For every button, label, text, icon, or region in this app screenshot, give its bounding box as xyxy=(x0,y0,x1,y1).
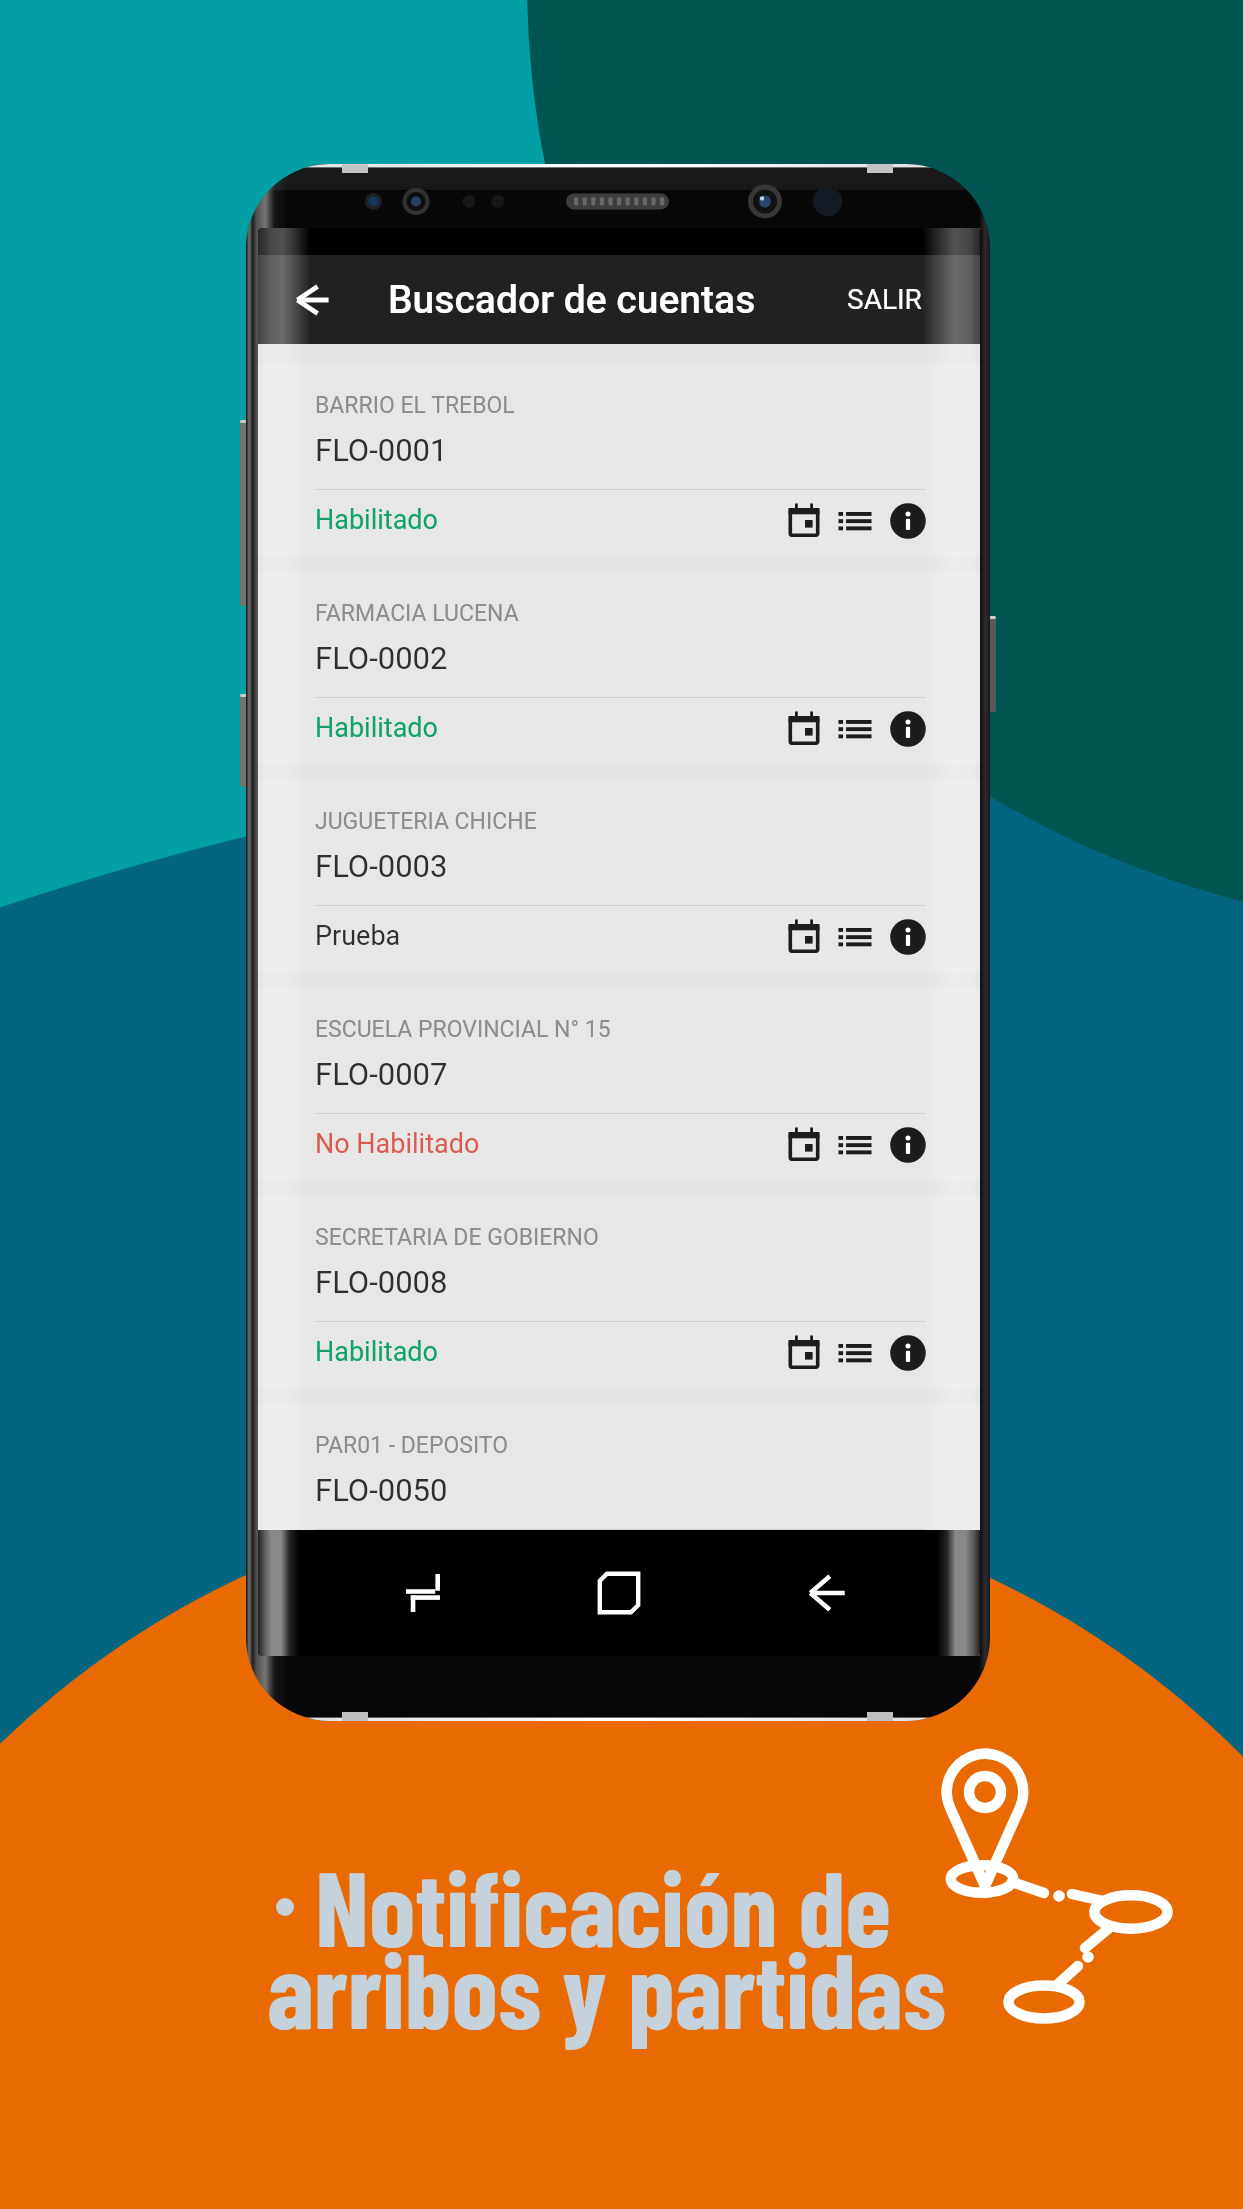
button[interactable]: Back xyxy=(275,262,351,338)
button[interactable]: Informacion xyxy=(881,702,935,756)
staticText: BARRIO EL TREBOL xyxy=(315,392,515,419)
staticText: SALIR xyxy=(847,283,922,316)
button[interactable]: Informacion xyxy=(881,1118,935,1172)
button[interactable]: Ver calendario xyxy=(777,1326,831,1380)
staticText: JUGUETERIA CHICHE xyxy=(315,808,537,835)
button[interactable]: SALIR xyxy=(823,269,980,330)
button[interactable]: BARRIO EL TREBOL xyxy=(258,364,980,557)
button[interactable]: Informacion xyxy=(881,1326,935,1380)
staticText: FLO-0050 xyxy=(315,1472,448,1508)
button[interactable]: Ver listado xyxy=(828,1118,882,1172)
staticText: FLO-0001 xyxy=(315,432,448,468)
staticText: SECRETARIA DE GOBIERNO xyxy=(315,1224,599,1251)
button[interactable]: Ver calendario xyxy=(777,1118,831,1172)
staticText: Buscador de cuentas xyxy=(388,277,756,323)
button[interactable]: PAR01 - DEPOSITO xyxy=(258,1404,980,1530)
button[interactable]: JUGUETERIA CHICHE xyxy=(258,780,980,973)
button[interactable]: Ver listado xyxy=(828,702,882,756)
staticText: Habilitado xyxy=(315,1336,438,1368)
button[interactable]: Ver listado xyxy=(828,910,882,964)
staticText: FLO-0007 xyxy=(315,1056,448,1092)
button[interactable]: Informacion xyxy=(881,494,935,548)
staticText: Notificación de xyxy=(315,1842,891,1968)
button[interactable]: Ver listado xyxy=(828,1326,882,1380)
button[interactable]: Ver calendario xyxy=(777,702,831,756)
staticText: FLO-0002 xyxy=(315,640,448,676)
button[interactable]: Inicio xyxy=(579,1553,659,1633)
button[interactable]: Informacion xyxy=(881,910,935,964)
button[interactable]: Recientes xyxy=(383,1530,463,1656)
button[interactable]: FARMACIA LUCENA xyxy=(258,572,980,765)
staticText: FLO-0003 xyxy=(315,848,448,884)
staticText: PAR01 - DEPOSITO xyxy=(315,1432,509,1459)
button[interactable]: Ver listado xyxy=(828,494,882,548)
staticText: FARMACIA LUCENA xyxy=(315,600,519,627)
staticText: Prueba xyxy=(315,920,401,952)
staticText: No Habilitado xyxy=(315,1128,480,1160)
staticText: arribos y partidas xyxy=(267,1924,946,2050)
button[interactable]: Ver calendario xyxy=(777,910,831,964)
button[interactable]: ESCUELA PROVINCIAL N° 15 xyxy=(258,988,980,1181)
button[interactable]: Ver calendario xyxy=(777,494,831,548)
staticText: FLO-0008 xyxy=(315,1264,448,1300)
other: Recorrido xyxy=(930,1730,1200,2035)
staticText: Habilitado xyxy=(315,712,438,744)
button[interactable]: SECRETARIA DE GOBIERNO xyxy=(258,1196,980,1389)
staticText: Habilitado xyxy=(315,504,438,536)
staticText: ESCUELA PROVINCIAL N° 15 xyxy=(315,1016,611,1043)
button[interactable]: Atras xyxy=(787,1530,867,1656)
